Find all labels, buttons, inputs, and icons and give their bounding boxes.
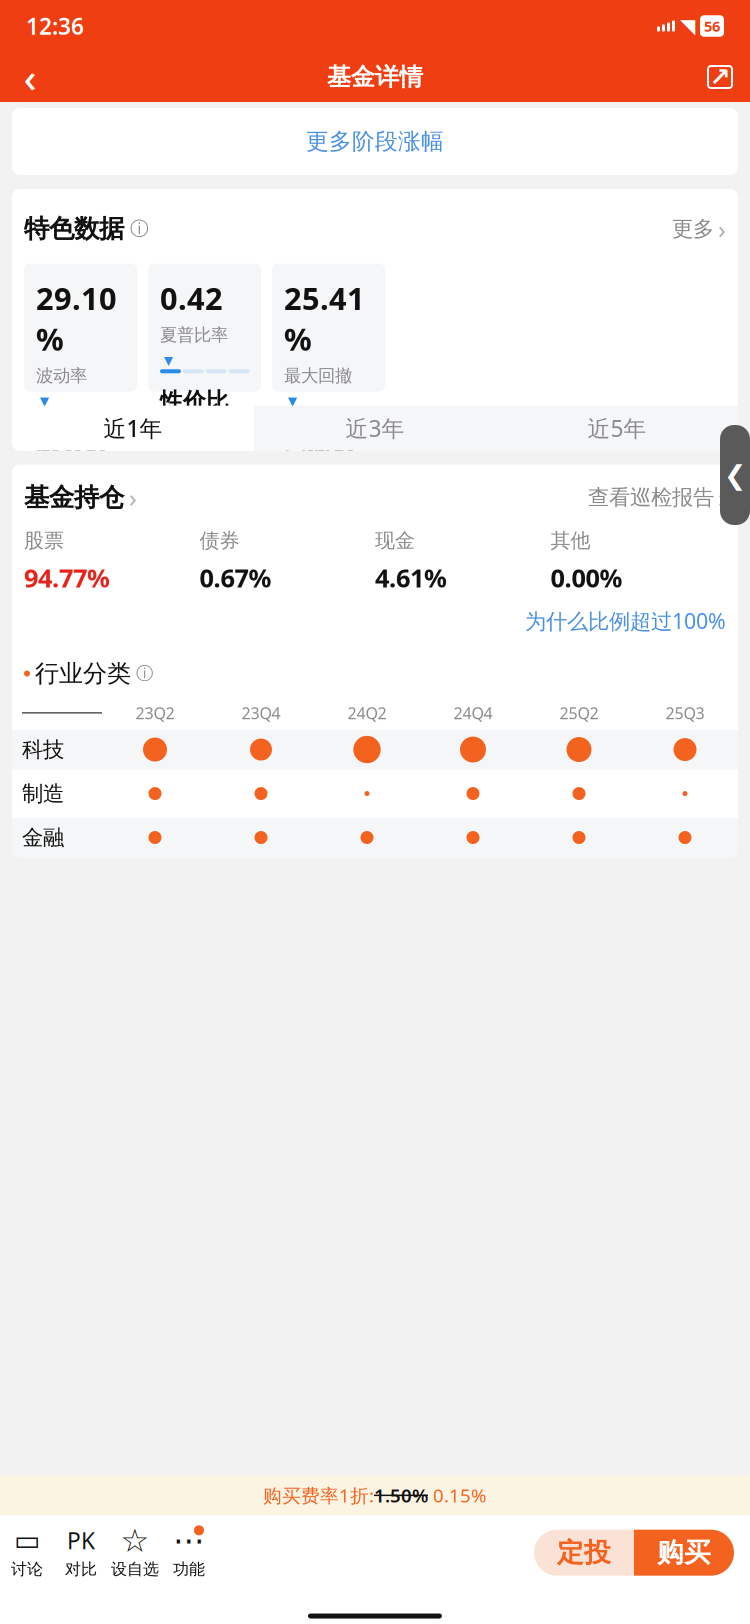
staticText: 债券 (199, 528, 239, 553)
staticText: 4.61% (375, 561, 447, 594)
button[interactable]: 近5年 (496, 406, 738, 451)
staticText: 更多 (672, 216, 714, 242)
staticText: ▼ (164, 354, 173, 367)
staticText: ▼ (288, 394, 297, 408)
button[interactable]: ▭ (0, 1520, 54, 1585)
staticText: 夏普比率 (160, 324, 228, 346)
staticText: 其他 (550, 528, 590, 553)
staticText: 行业分类 (35, 659, 131, 688)
staticText: ⓘ (130, 217, 149, 240)
staticText: › (129, 481, 137, 514)
staticText: ⋯ (173, 1522, 205, 1558)
staticText: ⓘ (136, 663, 153, 684)
staticText: 56 (704, 16, 720, 36)
button[interactable]: 分享 (698, 55, 742, 99)
staticText: 功能 (173, 1559, 205, 1579)
staticText: 94.77% (24, 561, 110, 594)
staticText: 0.42 (160, 278, 223, 318)
button[interactable]: ⋯ (162, 1520, 216, 1585)
staticText: 现金 (375, 528, 415, 553)
staticText: 购买 (657, 1536, 711, 1569)
staticText: 近3年 (345, 413, 404, 443)
staticText: 波动较大 (36, 428, 105, 484)
staticText: 性价比较低 (160, 387, 229, 443)
staticText: 23Q4 (241, 702, 280, 723)
staticText: 定投 (557, 1536, 611, 1569)
staticText: ◥ (680, 15, 695, 37)
staticText: 近5年 (587, 413, 646, 443)
staticText: ▭ (14, 1524, 40, 1556)
staticText: ↗ (709, 63, 730, 91)
staticText: 制造 (22, 780, 64, 807)
staticText: 近1年 (103, 413, 162, 443)
button[interactable]: 购买 (634, 1530, 734, 1576)
staticText: 12:36 (26, 11, 84, 41)
button[interactable]: 展开侧边栏 (720, 425, 750, 525)
button[interactable]: 定投 (534, 1530, 634, 1576)
staticText: 0.00% (550, 561, 622, 594)
staticText: ❮ (724, 460, 746, 490)
staticText: 0.15% (428, 1483, 487, 1508)
staticText: 为什么比例超过100% (525, 606, 726, 635)
staticText: 回撤较大 (284, 428, 353, 484)
button[interactable]: 基金持仓 (24, 481, 137, 514)
staticText: 24Q2 (347, 702, 386, 723)
button[interactable]: 为什么比例超过100% (12, 594, 738, 635)
staticText: 25Q2 (559, 702, 598, 723)
staticText: 讨论 (11, 1559, 43, 1579)
staticText: 股票 (24, 528, 64, 553)
staticText: 基金详情 (327, 62, 423, 92)
button[interactable]: 近3年 (254, 406, 496, 451)
button[interactable]: 更多 (672, 208, 726, 250)
staticText: 基金持仓 (24, 482, 124, 513)
staticText: 波动率 (36, 365, 87, 386)
staticText: 更多阶段涨幅 (306, 128, 444, 155)
staticText: 23Q2 (135, 702, 174, 723)
button[interactable]: 查看巡检报告 (588, 481, 726, 514)
button[interactable]: ☆ (108, 1520, 162, 1585)
staticText: 设自选 (111, 1559, 159, 1579)
staticText: › (718, 212, 726, 246)
staticText: 优于14%同类 (160, 448, 245, 492)
staticText: 25Q3 (665, 702, 704, 723)
staticText: 科技 (22, 736, 64, 763)
staticText: 优于14%同类 (36, 489, 121, 533)
staticText: 0.67% (199, 561, 271, 594)
staticText: 购买费率1折: (263, 1483, 374, 1508)
staticText: PK (67, 1525, 95, 1555)
staticText: ‹ (23, 50, 36, 103)
staticText: ☆ (120, 1522, 149, 1558)
button[interactable]: PK (54, 1520, 108, 1585)
staticText: 24Q4 (453, 702, 492, 723)
staticText: 最大回撤 (284, 365, 352, 386)
staticText: 对比 (65, 1559, 97, 1579)
staticText: 特色数据 (24, 213, 124, 244)
staticText: 29.10% (36, 278, 117, 359)
button[interactable]: 更多阶段涨幅 (12, 120, 738, 163)
staticText: 金融 (22, 824, 64, 851)
staticText: 25.41% (284, 278, 365, 359)
staticText: 查看巡检报告 (588, 484, 714, 511)
button[interactable]: 近1年 (12, 406, 254, 451)
staticText: › (718, 481, 726, 514)
button[interactable]: 返回 (8, 55, 52, 99)
staticText: 1.50% (374, 1483, 428, 1508)
staticText: ▼ (40, 394, 49, 408)
